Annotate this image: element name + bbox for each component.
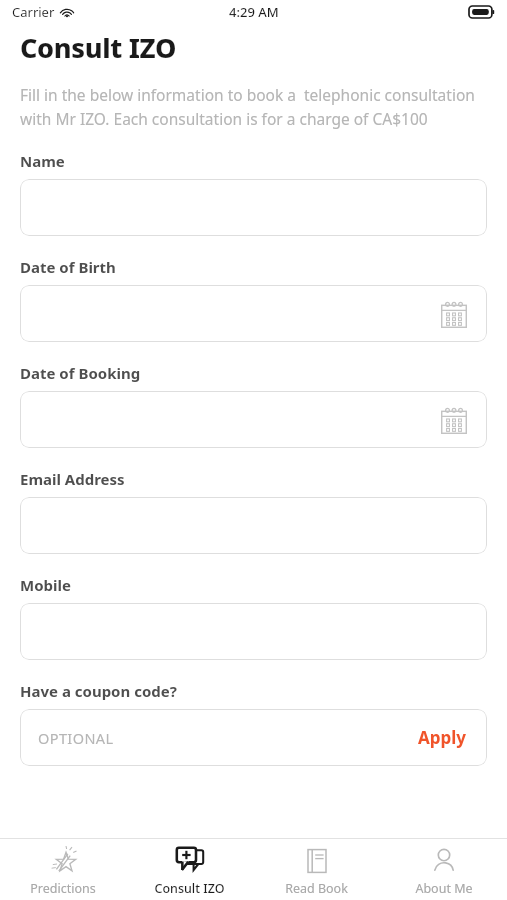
button[interactable] — [20, 497, 487, 554]
button[interactable]: Pick a date — [20, 285, 487, 342]
staticText: Carrier — [12, 3, 55, 21]
staticText: Date of Birth — [20, 257, 116, 277]
button[interactable] — [20, 603, 487, 660]
button[interactable]: OPTIONAL — [38, 728, 416, 748]
staticText: OPTIONAL — [38, 728, 114, 748]
staticText: Apply — [418, 726, 467, 749]
staticText: Name — [20, 151, 65, 171]
button[interactable]: About Me — [380, 839, 507, 900]
button[interactable]: Read Book — [253, 839, 380, 900]
staticText: 4:29 AM — [229, 3, 279, 21]
staticText: Fill in the below information to book a … — [20, 84, 493, 129]
button[interactable]: Pick a date — [437, 403, 471, 437]
staticText: Email Address — [20, 469, 125, 489]
staticText: Date of Booking — [20, 363, 141, 383]
button[interactable]: Pick a date — [437, 297, 471, 331]
staticText: About Me — [415, 880, 473, 897]
button[interactable] — [20, 179, 487, 236]
staticText: Consult IZO — [20, 29, 177, 66]
staticText: Predictions — [30, 880, 96, 897]
staticText: Read Book — [285, 880, 348, 897]
staticText: Mobile — [20, 575, 71, 595]
button[interactable]: Consult IZO — [126, 839, 253, 900]
staticText: Have a coupon code? — [20, 681, 177, 701]
staticText: Consult IZO — [154, 880, 225, 897]
button[interactable]: Predictions — [0, 839, 126, 900]
button[interactable]: Pick a date — [20, 391, 487, 448]
button[interactable]: Apply — [416, 720, 469, 755]
